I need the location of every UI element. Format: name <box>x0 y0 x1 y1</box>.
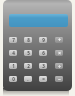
staticText: 6 <box>42 50 45 56</box>
staticText: 8 <box>27 37 30 43</box>
button[interactable]: × <box>55 50 63 56</box>
staticText: − <box>58 76 61 82</box>
button[interactable]: 6 <box>39 50 47 56</box>
staticText: 9 <box>42 37 45 43</box>
button[interactable]: 9 <box>39 37 47 43</box>
button[interactable]: = <box>39 76 47 82</box>
staticText: × <box>58 50 61 56</box>
button[interactable]: 1 <box>9 63 17 69</box>
staticText: 1 <box>12 63 15 69</box>
staticText: + <box>58 37 61 43</box>
button[interactable]: 8 <box>24 37 32 43</box>
button[interactable]: 2 <box>24 63 32 69</box>
button[interactable]: − <box>55 76 63 82</box>
staticText: 0 <box>12 76 15 82</box>
staticText: 2 <box>27 63 30 69</box>
staticText: = <box>42 76 45 82</box>
staticText: . <box>27 76 29 82</box>
button[interactable]: ÷ <box>55 63 63 69</box>
button[interactable]: 3 <box>39 63 47 69</box>
button[interactable]: 4 <box>9 50 17 56</box>
staticText: 7 <box>12 37 15 43</box>
staticText: 5 <box>27 50 30 56</box>
staticText: ÷ <box>58 63 61 69</box>
staticText: 3 <box>42 63 45 69</box>
staticText: 4 <box>12 50 15 56</box>
button[interactable]: . <box>24 76 32 82</box>
button[interactable]: 7 <box>9 37 17 43</box>
button[interactable] <box>9 14 68 27</box>
button[interactable]: + <box>55 37 63 43</box>
button[interactable]: 5 <box>24 50 32 56</box>
button[interactable]: 0 <box>9 76 17 82</box>
